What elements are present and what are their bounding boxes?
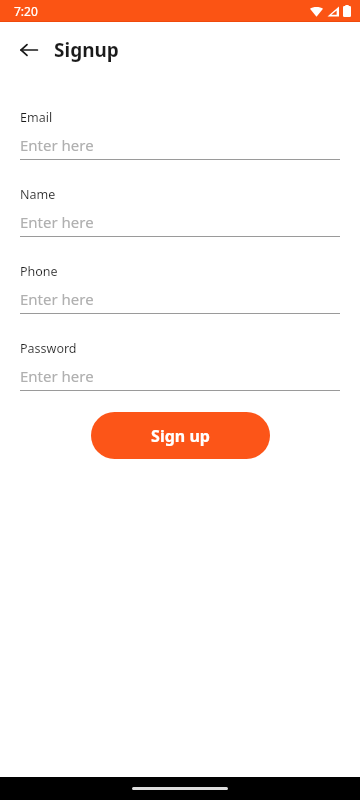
staticText: Sign up — [151, 425, 210, 447]
staticText: 7:20 — [14, 3, 38, 19]
staticText: Enter here — [20, 366, 94, 386]
button[interactable]: Sign up — [91, 412, 270, 459]
button[interactable]: Back — [13, 34, 45, 66]
staticText: Enter here — [20, 212, 94, 232]
staticText: Signup — [54, 37, 119, 63]
staticText: Password — [20, 340, 77, 357]
button[interactable]: Password — [20, 340, 340, 391]
staticText: Email — [20, 109, 53, 126]
button[interactable]: Email — [20, 109, 340, 160]
staticText: Phone — [20, 263, 58, 280]
staticText: Enter here — [20, 135, 94, 155]
button[interactable]: Phone — [20, 263, 340, 314]
button[interactable]: Name — [20, 186, 340, 237]
staticText: Enter here — [20, 289, 94, 309]
staticText: Name — [20, 186, 56, 203]
